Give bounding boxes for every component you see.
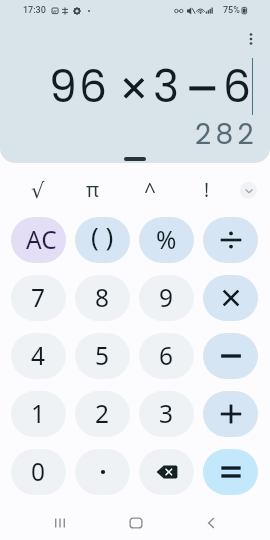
button[interactable]: Back <box>195 507 227 539</box>
button[interactable]: Divide <box>203 217 258 263</box>
button[interactable]: 6 <box>139 333 194 379</box>
staticText: 5 <box>95 339 110 372</box>
staticText: 9 <box>49 56 77 118</box>
button[interactable]: 2 <box>75 391 130 437</box>
staticText: 6 <box>79 56 107 118</box>
button[interactable]: More functions <box>240 182 257 199</box>
staticText: AC <box>26 223 57 256</box>
staticText: 1 <box>31 397 46 430</box>
button[interactable]: ^ <box>132 173 168 209</box>
button[interactable]: ! <box>189 172 225 208</box>
button[interactable]: Recent apps <box>44 507 76 539</box>
button[interactable]: √ <box>20 173 56 209</box>
button[interactable]: 5 <box>75 333 130 379</box>
staticText: ( ) <box>91 218 114 253</box>
button[interactable]: Equals <box>203 449 258 495</box>
staticText: √ <box>31 179 45 203</box>
staticText: π <box>86 176 100 203</box>
button[interactable]: 7 <box>11 275 66 321</box>
button[interactable]: 9 <box>139 275 194 321</box>
staticText: 3 <box>153 56 179 118</box>
button[interactable]: 0 <box>11 449 66 495</box>
button[interactable]: π <box>75 171 111 207</box>
staticText: 282 <box>195 115 259 154</box>
staticText: 7 <box>31 281 46 314</box>
button[interactable]: Clear <box>11 217 66 263</box>
button[interactable]: 8 <box>75 275 130 321</box>
staticText: 6 <box>159 339 174 372</box>
staticText: 8 <box>95 281 110 314</box>
staticText: 2 <box>95 397 110 430</box>
button[interactable]: Decimal point <box>75 449 130 495</box>
staticText: 4 <box>31 339 46 372</box>
button[interactable]: Add <box>203 391 258 437</box>
staticText: 3 <box>159 397 174 430</box>
button[interactable]: Parentheses <box>75 217 130 263</box>
staticText: 0 <box>31 455 46 488</box>
button[interactable]: Backspace <box>139 449 194 495</box>
staticText: % <box>156 223 177 256</box>
staticText: 6 <box>223 56 251 118</box>
button[interactable]: 1 <box>11 391 66 437</box>
staticText: 17:30 <box>23 5 46 16</box>
button[interactable]: Home <box>120 507 152 539</box>
button[interactable]: Percent <box>139 217 194 263</box>
button[interactable]: More options <box>239 27 262 50</box>
staticText: ^ <box>144 177 157 206</box>
button[interactable]: Subtract <box>203 333 258 379</box>
staticText: ! <box>204 177 210 203</box>
button[interactable]: 3 <box>139 391 194 437</box>
button[interactable]: Multiply <box>203 275 258 321</box>
button[interactable]: 4 <box>11 333 66 379</box>
staticText: 9 <box>159 281 174 314</box>
staticText: 75% <box>223 5 240 16</box>
